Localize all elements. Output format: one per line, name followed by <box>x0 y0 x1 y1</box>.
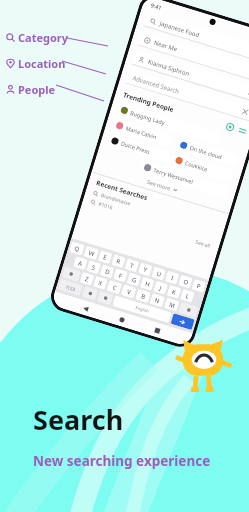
staticText: O <box>182 278 189 287</box>
button[interactable]: Japanese Food <box>143 11 249 64</box>
staticText: Kianna Siphron <box>147 58 190 78</box>
button[interactable]: See more <box>99 163 226 208</box>
staticText: #1016 <box>97 200 114 212</box>
staticText: S <box>90 263 97 272</box>
button[interactable]: F <box>113 268 128 282</box>
button[interactable]: X <box>93 276 108 290</box>
staticText: I <box>170 274 175 282</box>
other: People <box>6 85 15 94</box>
staticText: U <box>155 270 162 279</box>
staticText: Search <box>33 401 124 438</box>
button[interactable]: Advanced Search <box>126 69 249 121</box>
staticText: Q <box>73 244 80 254</box>
staticText: On the cloud <box>189 144 223 160</box>
button[interactable]: V <box>121 284 136 299</box>
staticText: English <box>135 305 150 314</box>
button[interactable]: K <box>167 285 181 299</box>
button[interactable]: Z <box>80 272 94 286</box>
staticText: Z <box>84 275 90 284</box>
button[interactable]: O <box>178 275 193 289</box>
button[interactable]: T <box>124 258 139 272</box>
button[interactable]: E <box>98 250 112 264</box>
button[interactable]: H <box>140 277 155 291</box>
button[interactable]: Clear <box>242 109 248 115</box>
button[interactable]: J <box>153 281 168 295</box>
button[interactable]: #1016 <box>90 198 214 242</box>
button[interactable]: Backspace <box>178 302 198 318</box>
staticText: Trending People <box>122 90 175 114</box>
button[interactable]: A <box>73 256 88 270</box>
button[interactable]: L <box>180 289 195 303</box>
button[interactable]: Recents <box>154 327 160 334</box>
button[interactable]: Q <box>69 241 85 256</box>
button[interactable]: G <box>126 272 141 286</box>
staticText: T <box>129 261 135 270</box>
staticText: M <box>168 301 176 310</box>
button[interactable]: Home <box>119 317 125 323</box>
button[interactable]: On the cloud <box>176 137 240 168</box>
staticText: P <box>196 282 202 291</box>
staticText: V <box>126 288 132 296</box>
button[interactable]: Bugging Lady <box>116 102 221 146</box>
staticText: L <box>184 292 190 301</box>
button[interactable]: Location <box>6 56 66 71</box>
button[interactable]: English <box>112 295 172 323</box>
button[interactable]: Kianna Siphron <box>132 50 249 102</box>
button[interactable]: Dulce Press <box>107 133 171 164</box>
button[interactable]: U <box>151 266 166 280</box>
staticText: See more <box>146 178 172 192</box>
staticText: New searching experience <box>33 452 211 470</box>
button[interactable]: W <box>83 246 99 260</box>
staticText: Terry Westanvel <box>153 166 195 185</box>
staticText: F <box>117 271 123 280</box>
staticText: Japanese Food <box>159 20 201 39</box>
staticText: Recent Searches <box>95 178 149 202</box>
other: Category <box>6 33 15 42</box>
staticText: K <box>171 288 177 297</box>
staticText: Location <box>18 56 66 71</box>
button[interactable]: Search <box>170 313 195 330</box>
staticText: Near Me <box>153 39 179 54</box>
staticText: Category <box>18 30 69 45</box>
button[interactable]: Back <box>83 306 89 312</box>
staticText: G <box>131 276 138 285</box>
staticText: Coukkice <box>184 159 209 173</box>
staticText: Brandonwise <box>100 192 132 208</box>
staticText: R <box>115 257 121 266</box>
button[interactable]: Emoji <box>82 286 98 301</box>
button[interactable]: D <box>100 264 114 278</box>
staticText: Bugging Lady <box>130 109 166 126</box>
button[interactable]: Y <box>138 262 153 276</box>
button[interactable]: Clear <box>248 89 249 96</box>
button[interactable]: Coukkice <box>171 152 235 183</box>
staticText: H <box>144 280 151 289</box>
staticText: B <box>140 292 146 301</box>
button[interactable]: R <box>111 254 126 268</box>
staticText: N <box>154 296 161 305</box>
staticText: D <box>104 267 111 276</box>
button[interactable]: M <box>164 297 179 312</box>
button[interactable]: People <box>6 82 56 97</box>
button[interactable]: Category <box>6 30 69 45</box>
button[interactable]: Near Me <box>138 30 249 83</box>
staticText: Maria Calvin <box>125 124 157 140</box>
button[interactable]: Maria Calvin <box>112 118 176 148</box>
button[interactable]: Filter <box>238 126 247 135</box>
button[interactable]: N <box>149 293 165 307</box>
button[interactable]: I <box>165 271 179 285</box>
button[interactable]: Numbers <box>58 279 83 296</box>
button[interactable]: See all <box>194 239 212 250</box>
staticText: X <box>97 279 103 288</box>
button[interactable]: Terry Westanvel <box>139 160 230 199</box>
button[interactable]: P <box>191 279 206 293</box>
button[interactable]: Brandonwise <box>92 190 217 234</box>
staticText: A <box>77 259 83 268</box>
staticText: W <box>87 249 96 258</box>
button[interactable]: S <box>86 260 101 274</box>
button[interactable]: Language <box>97 291 113 305</box>
staticText: Advanced Search <box>131 74 181 96</box>
button[interactable]: C <box>106 280 122 294</box>
button[interactable]: Locate <box>226 123 234 131</box>
button[interactable]: B <box>135 289 151 303</box>
button[interactable]: Shift <box>61 266 81 282</box>
